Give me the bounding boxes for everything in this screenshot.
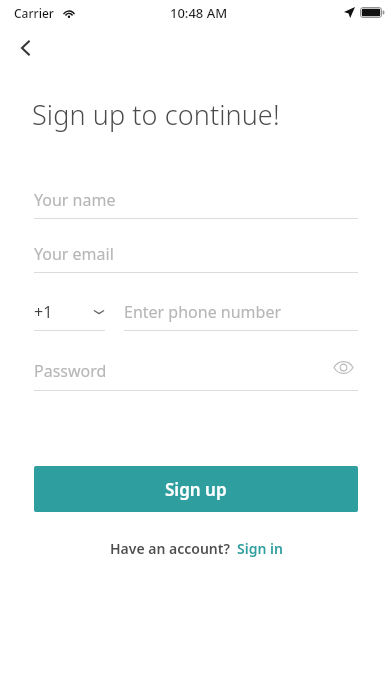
button[interactable]: +1 [34,294,105,330]
button[interactable]: Sign up [34,466,358,512]
button[interactable]: Your name [34,182,358,218]
button[interactable]: Sign in [237,539,283,558]
staticText: Carrier [14,5,54,21]
button[interactable]: Password [34,352,358,390]
staticText: Have an account? [110,539,230,558]
button[interactable]: Back [6,28,46,68]
button[interactable]: Show password [326,350,360,384]
staticText: Password [34,360,107,382]
staticText: Your email [34,243,114,265]
staticText: Sign in [237,539,283,558]
button[interactable]: Enter phone number [124,294,358,330]
staticText: +1 [34,301,53,323]
staticText: 10:48 AM [170,4,228,22]
button[interactable]: Your email [34,236,358,272]
staticText: Enter phone number [124,301,282,323]
staticText: Your name [34,189,116,211]
staticText: Sign up [165,478,227,501]
staticText: Sign up to continue! [32,96,280,133]
